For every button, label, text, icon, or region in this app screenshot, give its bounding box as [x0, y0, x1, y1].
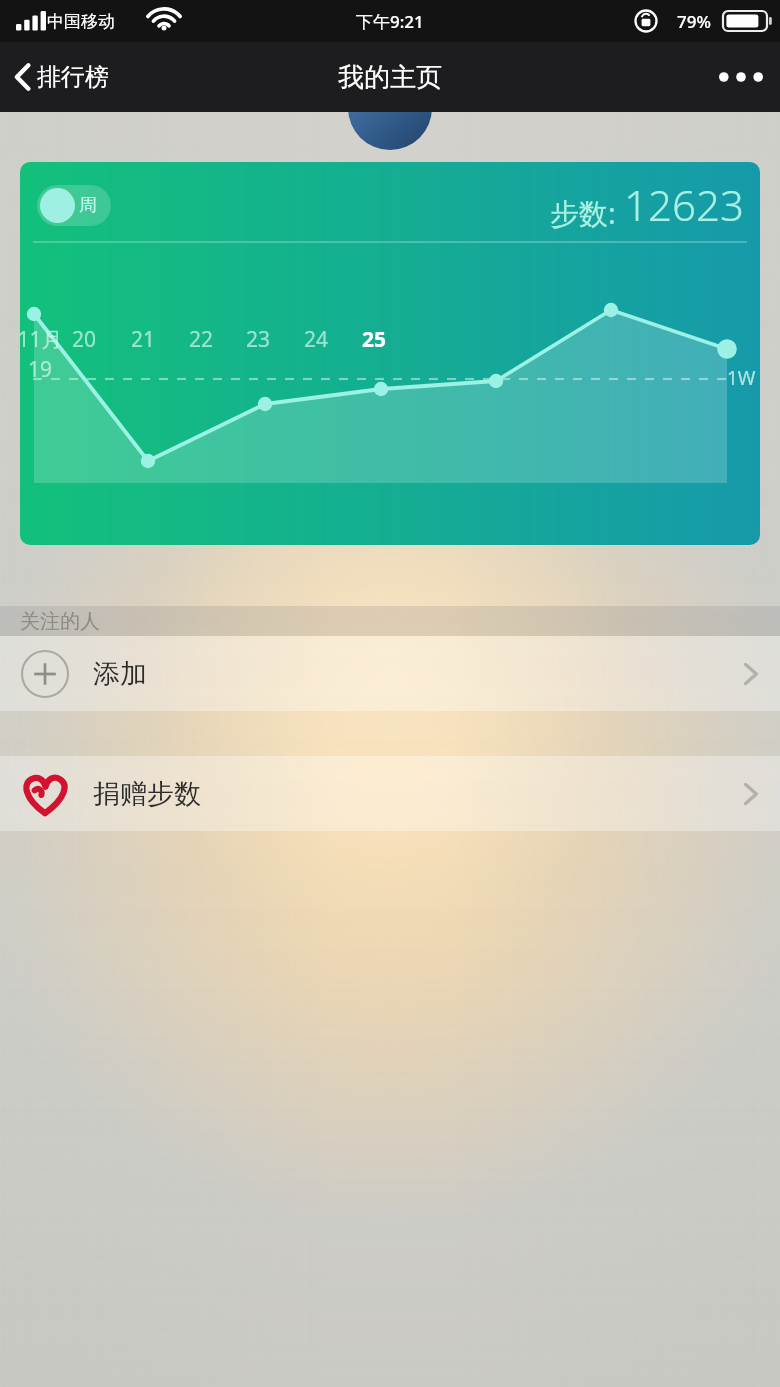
staticText: 排行榜 — [37, 62, 109, 92]
staticText: 中国移动 — [47, 11, 115, 32]
staticText: 周 — [79, 194, 97, 217]
staticText: 捐赠步数 — [93, 777, 201, 811]
staticText: 22 — [171, 325, 231, 354]
staticText: 79% — [677, 10, 711, 33]
staticText: 20 — [54, 325, 114, 354]
staticText: 12623 — [624, 176, 744, 233]
button[interactable]: 周 — [20, 162, 760, 545]
staticText: 21 — [113, 325, 173, 354]
staticText: 我的主页 — [338, 61, 442, 94]
staticText: 11月19 — [20, 325, 70, 384]
staticText: 添加 — [93, 657, 147, 691]
button[interactable]: 排行榜 — [0, 52, 125, 102]
button[interactable]: 添加 — [0, 636, 780, 711]
button[interactable]: More options — [702, 54, 780, 100]
staticText: 步数: — [550, 193, 616, 233]
button[interactable]: 周 — [37, 185, 111, 226]
button[interactable]: 捐赠步数 — [0, 756, 780, 831]
staticText: 23 — [228, 325, 288, 354]
staticText: 24 — [286, 325, 346, 354]
staticText: 1W — [727, 365, 756, 391]
staticText: 下午9:21 — [356, 10, 424, 33]
staticText: 25 — [344, 325, 404, 354]
staticText: 关注的人 — [20, 609, 100, 634]
